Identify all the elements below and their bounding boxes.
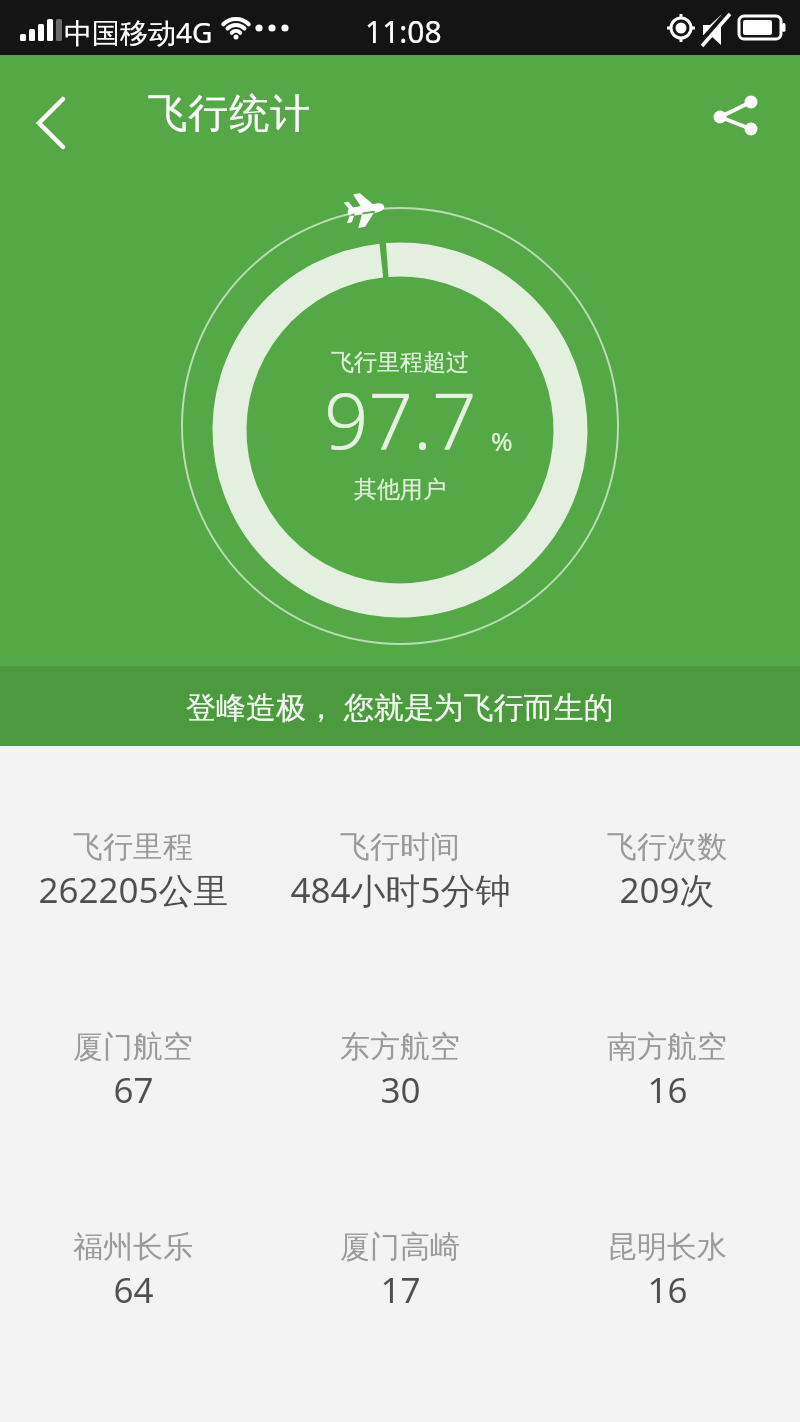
- staticText: 昆明长水: [607, 1228, 727, 1266]
- staticText: 飞行时间: [340, 828, 460, 866]
- staticText: 飞行统计: [147, 88, 311, 138]
- staticText: 16: [647, 1266, 688, 1314]
- staticText: 209次: [619, 866, 715, 914]
- staticText: 福州长乐: [73, 1228, 193, 1266]
- staticText: 484小时5分钟: [290, 866, 511, 914]
- staticText: 262205公里: [38, 866, 229, 914]
- staticText: 64: [113, 1266, 154, 1314]
- staticText: 67: [113, 1066, 154, 1114]
- staticText: 厦门航空: [73, 1028, 193, 1066]
- button[interactable]: [18, 90, 84, 156]
- button[interactable]: [700, 83, 770, 149]
- staticText: 厦门高崎: [340, 1228, 460, 1266]
- staticText: 30: [380, 1066, 421, 1114]
- staticText: 97.7: [324, 366, 477, 472]
- staticText: %: [491, 423, 513, 458]
- staticText: 16: [647, 1066, 688, 1114]
- staticText: 飞行里程超过: [331, 348, 469, 377]
- staticText: 其他用户: [354, 475, 446, 504]
- staticText: 东方航空: [340, 1028, 460, 1066]
- staticText: 中国移动4G: [64, 13, 213, 51]
- staticText: 南方航空: [607, 1028, 727, 1066]
- staticText: 飞行里程: [73, 828, 193, 866]
- staticText: 飞行次数: [607, 828, 727, 866]
- staticText: 登峰造极， 您就是为飞行而生的: [186, 686, 614, 727]
- staticText: 17: [380, 1266, 421, 1314]
- staticText: 11:08: [365, 11, 442, 52]
